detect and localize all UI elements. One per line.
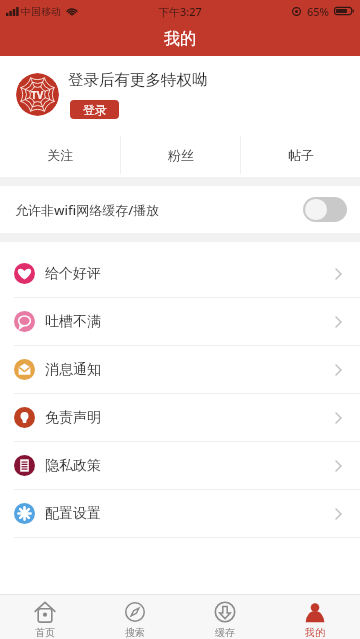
staticText: 65% [307,4,329,19]
staticText: 首页 [35,626,55,639]
button[interactable]: 免责声明 [0,394,360,441]
staticText: 免责声明 [45,409,101,427]
staticText: 我的 [164,29,196,49]
button[interactable]: 给个好评 [0,250,360,297]
staticText: 我的 [305,626,325,639]
staticText: 缓存 [215,626,235,639]
button[interactable]: 缓存 [180,601,270,639]
button[interactable]: 搜索 [90,601,180,639]
button[interactable]: 允许非wifi网络缓存/播放 [0,186,360,233]
button[interactable]: Avatar [16,73,59,116]
button[interactable]: 帖子 [241,133,360,177]
staticText: 中国移动 [21,5,61,18]
button[interactable]: 我的 [270,601,360,639]
staticText: 下午3:27 [158,4,202,19]
staticText: 配置设置 [45,505,101,523]
staticText: 关注 [47,147,73,163]
staticText: 登录 [83,102,107,117]
staticText: 帖子 [288,147,314,163]
button[interactable]: 关注 [0,133,120,177]
button[interactable]: 配置设置 [0,490,360,537]
staticText: 消息通知 [45,361,101,379]
staticText: 给个好评 [45,265,101,283]
button[interactable]: 隐私政策 [0,442,360,489]
staticText: 隐私政策 [45,457,101,475]
staticText: 登录后有更多特权呦 [68,70,208,90]
staticText: 搜索 [125,626,145,639]
staticText: 粉丝 [168,147,194,163]
button[interactable]: 登录 [70,100,119,119]
button[interactable]: Toggle non-wifi caching [303,197,347,222]
button[interactable]: 粉丝 [121,133,240,177]
staticText: 吐槽不满 [45,313,101,331]
staticText: TV [31,88,44,102]
button[interactable]: 吐槽不满 [0,298,360,345]
button[interactable]: 消息通知 [0,346,360,393]
staticText: 允许非wifi网络缓存/播放 [15,201,160,219]
button[interactable]: 首页 [0,601,90,639]
